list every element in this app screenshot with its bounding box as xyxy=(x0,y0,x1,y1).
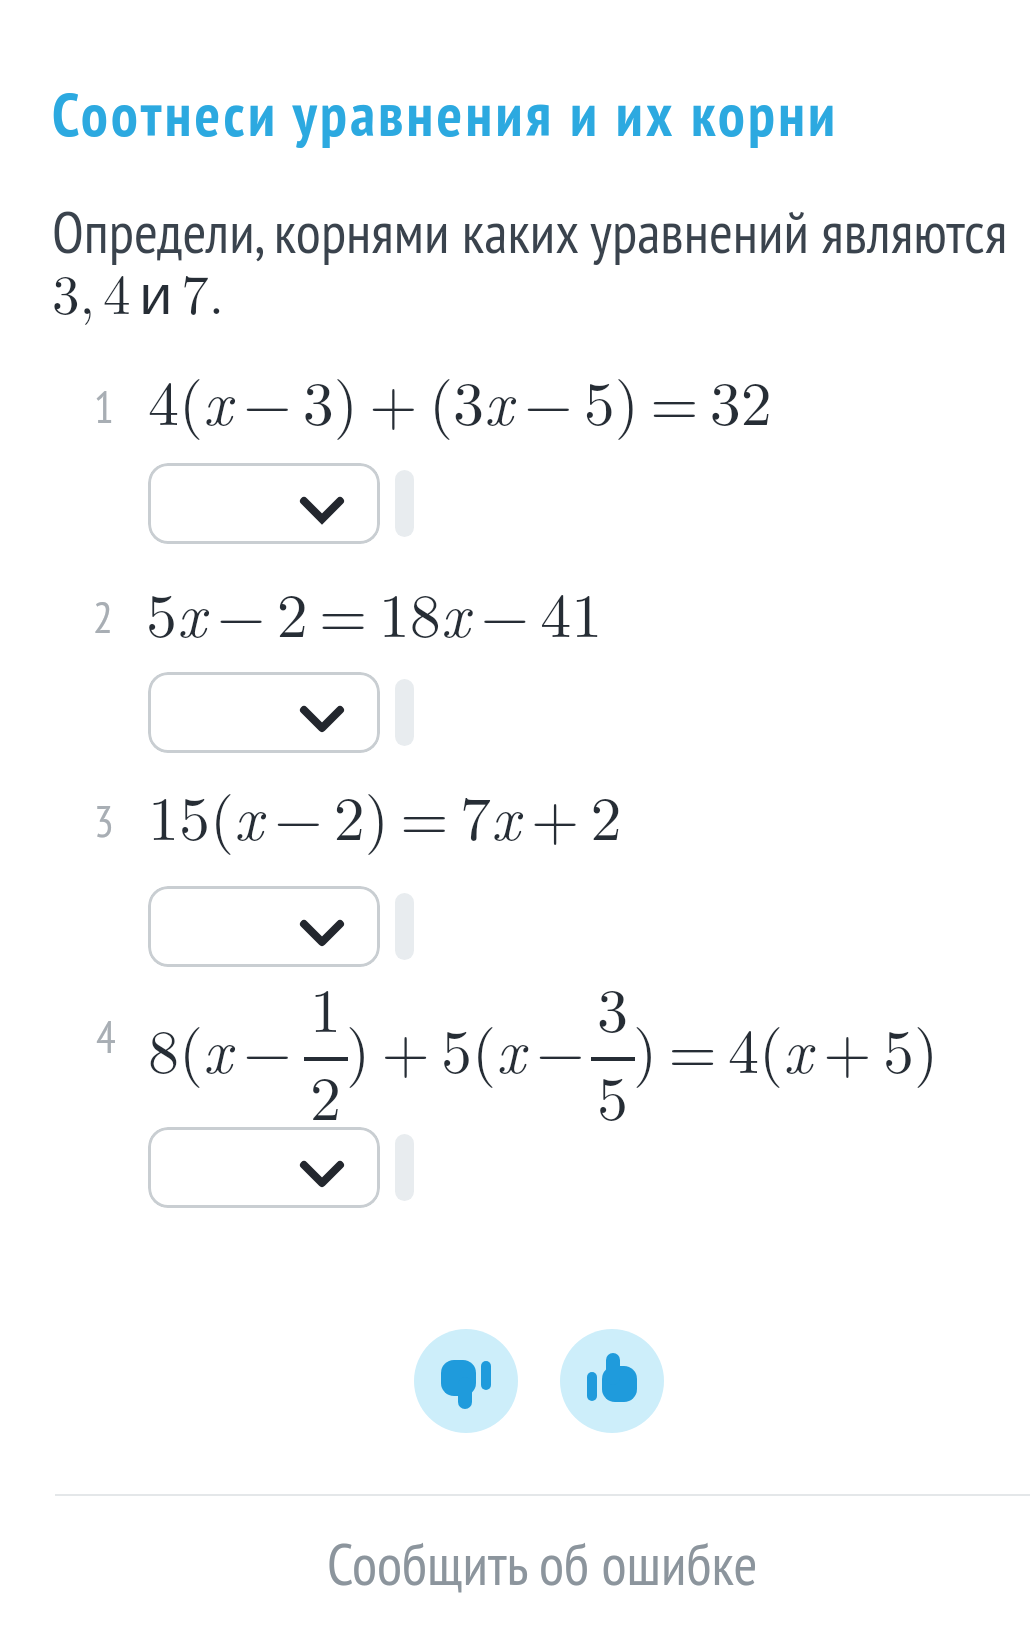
staticText: 1 xyxy=(310,962,342,1050)
staticText: ) + 5(x − xyxy=(346,1003,585,1091)
staticText: 8(x − xyxy=(148,1003,292,1091)
button[interactable]: Сообщить об ошибке xyxy=(55,1526,1030,1601)
staticText: 4 xyxy=(96,1008,116,1065)
staticText: Определи, корнями каких уравнений являют… xyxy=(52,194,1008,269)
button[interactable] xyxy=(148,672,380,753)
staticText: ) = 4(x + 5) xyxy=(633,1003,939,1091)
staticText: 3 xyxy=(94,792,114,849)
staticText: 4(x − 3) + (3x − 5) = 32 xyxy=(148,355,772,443)
staticText: 15(x − 2) = 7x + 2 xyxy=(148,770,622,858)
staticText: 2 xyxy=(93,588,113,645)
button[interactable] xyxy=(414,1329,518,1433)
button[interactable] xyxy=(560,1329,664,1433)
staticText: 3 xyxy=(597,962,629,1050)
staticText: 2 xyxy=(310,1050,342,1138)
staticText: Соотнеси уравнения и их корни xyxy=(52,75,839,153)
button[interactable] xyxy=(148,886,380,967)
staticText: 5 xyxy=(597,1050,629,1138)
staticText: 3, 4 и 7. xyxy=(52,252,224,330)
staticText: 1 xyxy=(94,378,114,435)
button[interactable] xyxy=(148,463,380,544)
staticText: 5x − 2 = 18x − 41 xyxy=(146,567,603,655)
staticText: Сообщить об ошибке xyxy=(327,1526,758,1601)
button[interactable] xyxy=(148,1127,380,1208)
